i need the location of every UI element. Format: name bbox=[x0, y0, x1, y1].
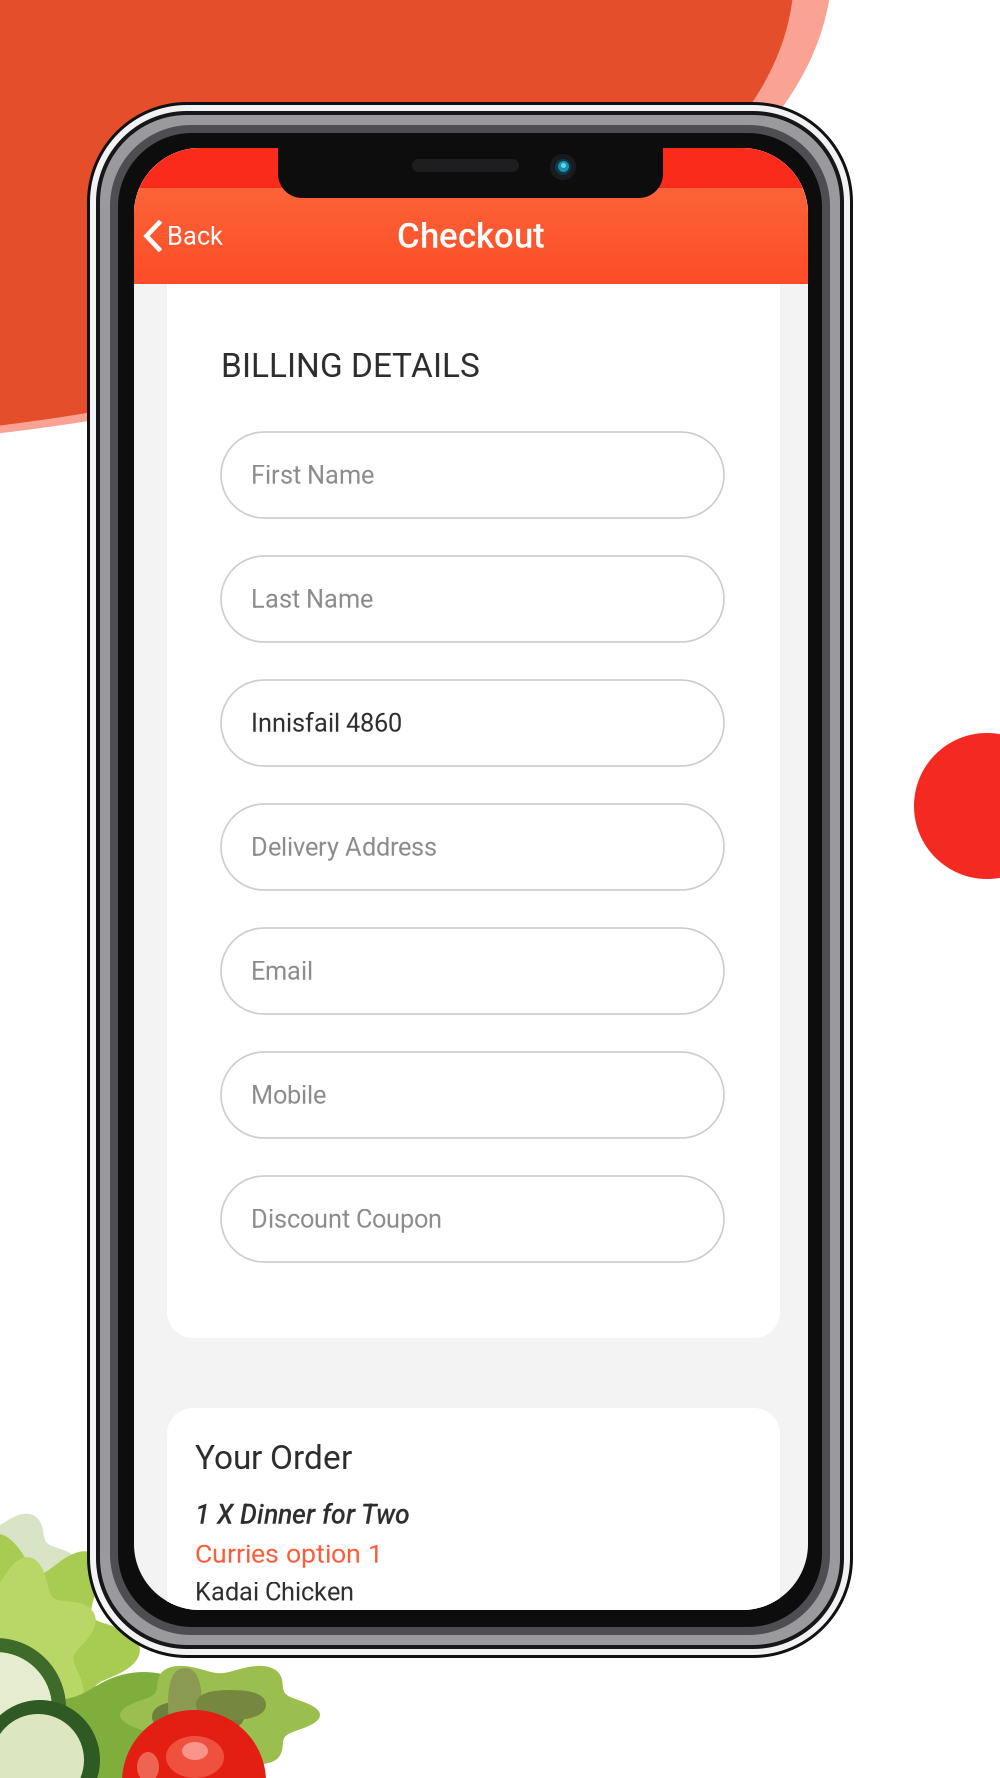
staticText: BILLING DETAILS bbox=[221, 346, 480, 385]
button[interactable]: Last Name bbox=[221, 556, 724, 642]
button[interactable]: First Name bbox=[221, 432, 724, 518]
button[interactable]: Innisfail 4860 bbox=[221, 680, 724, 766]
staticText: Email bbox=[251, 956, 313, 986]
staticText: Innisfail 4860 bbox=[251, 708, 402, 738]
staticText: Back bbox=[167, 221, 223, 251]
staticText: Last Name bbox=[251, 584, 373, 614]
button[interactable]: Mobile bbox=[221, 1052, 724, 1138]
button[interactable]: Back bbox=[134, 188, 237, 284]
staticText: Delivery Address bbox=[251, 832, 437, 862]
staticText: Your Order bbox=[195, 1438, 352, 1477]
button[interactable]: Delivery Address bbox=[221, 804, 724, 890]
staticText: Curries option 1 bbox=[195, 1538, 383, 1569]
staticText: Mobile bbox=[251, 1080, 326, 1110]
button[interactable]: Email bbox=[221, 928, 724, 1014]
staticText: Kadai Chicken bbox=[195, 1577, 354, 1607]
staticText: Discount Coupon bbox=[251, 1204, 442, 1234]
button[interactable]: Discount Coupon bbox=[221, 1176, 724, 1262]
staticText: 1 X Dinner for Two bbox=[195, 1499, 410, 1530]
staticText: First Name bbox=[251, 460, 374, 490]
staticText: Checkout bbox=[397, 216, 545, 256]
